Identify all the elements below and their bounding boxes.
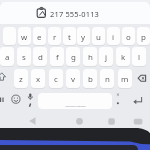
- staticText: t: [68, 32, 71, 43]
- staticText: y: [81, 32, 86, 43]
- button[interactable]: [0, 2, 150, 24]
- button[interactable]: x: [31, 69, 45, 88]
- button[interactable]: m: [118, 69, 132, 88]
- button[interactable]: [25, 92, 36, 109]
- staticText: Microsoft SwiftKey: [65, 104, 86, 107]
- staticText: o: [126, 32, 131, 43]
- staticText: e: [37, 32, 42, 43]
- button[interactable]: [135, 69, 150, 88]
- button[interactable]: f: [50, 47, 64, 66]
- staticText: u: [96, 32, 101, 43]
- staticText: h: [88, 52, 93, 63]
- button[interactable]: c: [49, 69, 63, 88]
- staticText: p: [141, 32, 146, 43]
- button[interactable]: j: [99, 47, 113, 66]
- staticText: v: [71, 74, 76, 85]
- staticText: r: [53, 32, 57, 43]
- button[interactable]: [103, 113, 120, 129]
- button[interactable]: Microsoft SwiftKey: [38, 93, 112, 109]
- button[interactable]: y: [77, 27, 90, 45]
- staticText: j: [105, 52, 108, 63]
- button[interactable]: b: [83, 69, 97, 88]
- button[interactable]: k: [116, 47, 130, 66]
- button[interactable]: r: [48, 27, 61, 45]
- staticText: f: [56, 52, 59, 63]
- staticText: d: [38, 52, 43, 63]
- staticText: l: [138, 52, 141, 63]
- staticText: a: [5, 52, 10, 63]
- button[interactable]: o: [122, 27, 135, 45]
- button[interactable]: g: [66, 47, 80, 66]
- button[interactable]: i: [107, 27, 120, 45]
- staticText: c: [54, 74, 58, 85]
- staticText: z: [19, 74, 23, 85]
- button[interactable]: z: [14, 69, 28, 88]
- staticText: m: [121, 74, 129, 85]
- staticText: b: [88, 74, 93, 85]
- button[interactable]: u: [92, 27, 105, 45]
- button[interactable]: l: [132, 47, 146, 66]
- button[interactable]: [112, 92, 124, 109]
- button[interactable]: [24, 112, 41, 128]
- button[interactable]: t: [63, 27, 76, 45]
- staticText: k: [121, 52, 126, 63]
- button[interactable]: w: [18, 27, 31, 45]
- staticText: x: [36, 74, 41, 85]
- button[interactable]: [129, 113, 147, 129]
- button[interactable]: [10, 92, 22, 109]
- staticText: 217 555-0113: [50, 9, 100, 19]
- button[interactable]: a: [0, 47, 14, 66]
- button[interactable]: [130, 92, 146, 109]
- button[interactable]: h: [83, 47, 97, 66]
- button[interactable]: s: [17, 47, 31, 66]
- staticText: g: [71, 52, 76, 63]
- button[interactable]: [0, 69, 13, 88]
- staticText: w: [21, 32, 28, 43]
- staticText: n: [105, 74, 110, 85]
- staticText: s: [22, 52, 26, 63]
- button[interactable]: [71, 113, 88, 129]
- staticText: i: [112, 32, 115, 43]
- button[interactable]: [3, 27, 16, 45]
- button[interactable]: d: [33, 47, 47, 66]
- button[interactable]: p: [137, 27, 150, 45]
- button[interactable]: e: [33, 27, 46, 45]
- button[interactable]: v: [66, 69, 80, 88]
- button[interactable]: n: [100, 69, 114, 88]
